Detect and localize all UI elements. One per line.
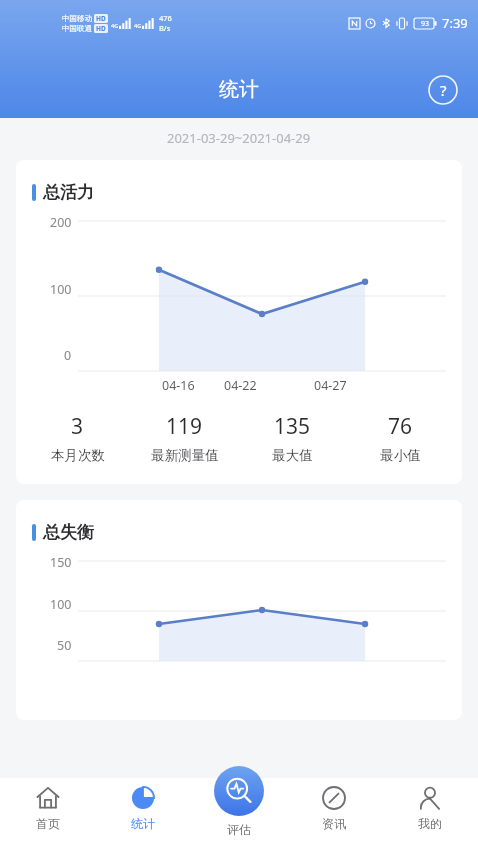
staticText: 0	[64, 347, 72, 364]
button[interactable]: 总失衡	[16, 500, 462, 720]
staticText: 统计	[131, 816, 155, 831]
button[interactable]: 119	[131, 412, 238, 464]
staticText: 3	[71, 412, 84, 441]
staticText: 我的	[418, 816, 442, 831]
staticText: 首页	[36, 816, 60, 831]
button[interactable]: 我的	[382, 786, 478, 850]
staticText: 中国联通	[62, 24, 92, 33]
staticText: 04-27	[314, 377, 347, 394]
staticText: 200	[50, 214, 72, 231]
staticText: 476	[159, 13, 172, 23]
staticText: 4G	[134, 22, 142, 29]
staticText: HD	[96, 14, 106, 23]
staticText: 50	[57, 637, 72, 654]
staticText: 04-22	[224, 377, 257, 394]
staticText: 评估	[227, 822, 251, 837]
button[interactable]: 135	[238, 412, 346, 464]
staticText: 中国移动	[62, 14, 92, 23]
staticText: B/s	[159, 23, 171, 33]
staticText: HD	[96, 24, 106, 33]
staticText: 150	[50, 554, 72, 571]
staticText: 76	[388, 412, 413, 441]
staticText: 本月次数	[51, 447, 105, 464]
staticText: 总失衡	[43, 522, 94, 543]
staticText: 最小值	[380, 447, 421, 464]
staticText: 2021-03-29~2021-04-29	[167, 129, 311, 147]
button[interactable]: 首页	[0, 786, 95, 850]
staticText: 119	[166, 412, 203, 441]
staticText: 最新测量值	[151, 447, 219, 464]
staticText: ?	[440, 80, 447, 100]
button[interactable]: 总活力	[16, 160, 462, 484]
staticText: 100	[50, 596, 72, 613]
staticText: 最大值	[272, 447, 313, 464]
staticText: 04-16	[162, 377, 195, 394]
button[interactable]: 评估	[214, 766, 264, 816]
button[interactable]: 统计	[95, 786, 190, 850]
button[interactable]: 3	[24, 412, 131, 464]
staticText: 7:39	[442, 14, 468, 32]
staticText: 100	[50, 281, 72, 298]
staticText: 资讯	[322, 816, 346, 831]
staticText: 统计	[219, 77, 259, 102]
staticText: 135	[274, 412, 311, 441]
button[interactable]: 76	[346, 412, 454, 464]
staticText: 总活力	[43, 182, 94, 203]
button[interactable]: Help	[426, 73, 460, 107]
button[interactable]: 资讯	[286, 786, 382, 850]
staticText: 4G	[111, 22, 119, 29]
staticText: 93	[421, 19, 430, 29]
